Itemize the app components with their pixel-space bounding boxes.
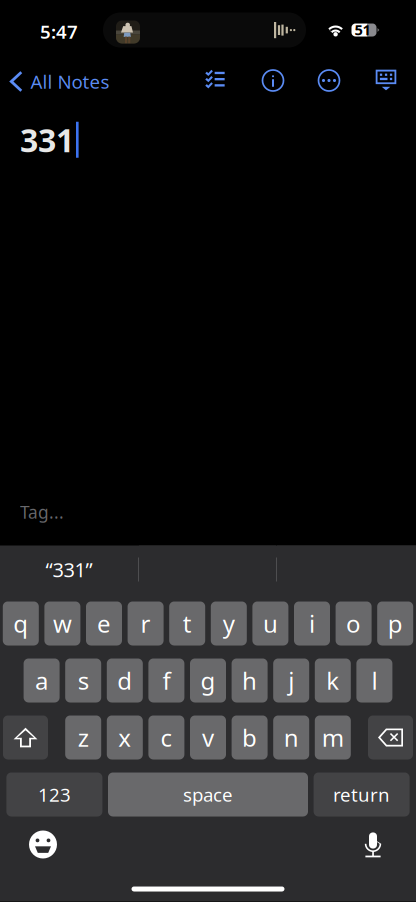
button[interactable]: b: [232, 715, 268, 759]
staticText: o: [346, 608, 361, 639]
button[interactable]: Info: [252, 59, 294, 101]
staticText: v: [202, 722, 214, 753]
button[interactable]: return: [314, 772, 410, 816]
staticText: 51: [354, 20, 370, 39]
button[interactable]: z: [65, 715, 101, 759]
button[interactable]: q: [3, 601, 39, 645]
staticText: m: [322, 722, 344, 753]
staticText: i: [309, 608, 315, 639]
staticText: p: [388, 608, 403, 639]
staticText: s: [78, 665, 89, 696]
staticText: u: [263, 608, 278, 639]
staticText: z: [78, 722, 89, 753]
staticText: j: [288, 665, 294, 696]
button[interactable]: 123: [6, 772, 102, 816]
button[interactable]: Delete: [368, 715, 413, 759]
button[interactable]: s: [65, 658, 101, 702]
staticText: h: [242, 665, 257, 696]
button[interactable]: x: [107, 715, 143, 759]
button[interactable]: Hide keyboard: [365, 59, 407, 101]
button[interactable]: j: [273, 658, 309, 702]
button[interactable]: h: [232, 658, 268, 702]
staticText: b: [242, 722, 257, 753]
button[interactable]: m: [315, 715, 351, 759]
staticText: f: [162, 665, 170, 696]
button[interactable]: v: [190, 715, 226, 759]
staticText: d: [117, 665, 132, 696]
staticText: space: [183, 782, 233, 807]
staticText: t: [183, 608, 192, 639]
button[interactable]: y: [211, 601, 247, 645]
button[interactable]: Checklist: [194, 56, 236, 98]
staticText: 331: [20, 118, 74, 161]
button[interactable]: More: [308, 59, 350, 101]
button[interactable]: t: [169, 601, 205, 645]
button[interactable]: w: [44, 601, 80, 645]
button[interactable]: a: [24, 658, 60, 702]
staticText: e: [97, 608, 111, 639]
button[interactable]: Dictate: [346, 824, 400, 864]
button[interactable]: space: [108, 772, 308, 816]
button[interactable]: k: [315, 658, 351, 702]
staticText: 123: [38, 782, 71, 807]
button[interactable]: e: [86, 601, 122, 645]
button[interactable]: Emoji: [16, 824, 70, 864]
staticText: q: [13, 608, 28, 639]
button[interactable]: n: [273, 715, 309, 759]
staticText: “331”: [45, 556, 92, 583]
button[interactable]: f: [148, 658, 184, 702]
staticText: All Notes: [30, 69, 109, 94]
staticText: w: [53, 608, 72, 639]
staticText: n: [284, 722, 299, 753]
button[interactable]: c: [148, 715, 184, 759]
staticText: c: [160, 722, 172, 753]
staticText: 5:47: [40, 19, 78, 44]
button[interactable]: u: [252, 601, 288, 645]
button[interactable]: “331”: [0, 545, 138, 593]
staticText: r: [141, 608, 151, 639]
button[interactable]: g: [190, 658, 226, 702]
staticText: Tag...: [20, 500, 64, 523]
staticText: l: [371, 665, 377, 696]
staticText: g: [200, 665, 215, 696]
staticText: a: [35, 665, 48, 696]
staticText: y: [223, 608, 235, 639]
button[interactable]: o: [336, 601, 372, 645]
button[interactable]: l: [356, 658, 392, 702]
staticText: k: [326, 665, 339, 696]
button[interactable]: Shift: [3, 715, 48, 759]
button[interactable]: All Notes: [9, 61, 159, 101]
button[interactable]: d: [107, 658, 143, 702]
staticText: x: [118, 722, 131, 753]
button[interactable]: p: [377, 601, 413, 645]
button[interactable]: i: [294, 601, 330, 645]
button[interactable]: r: [128, 601, 164, 645]
staticText: return: [333, 782, 390, 807]
